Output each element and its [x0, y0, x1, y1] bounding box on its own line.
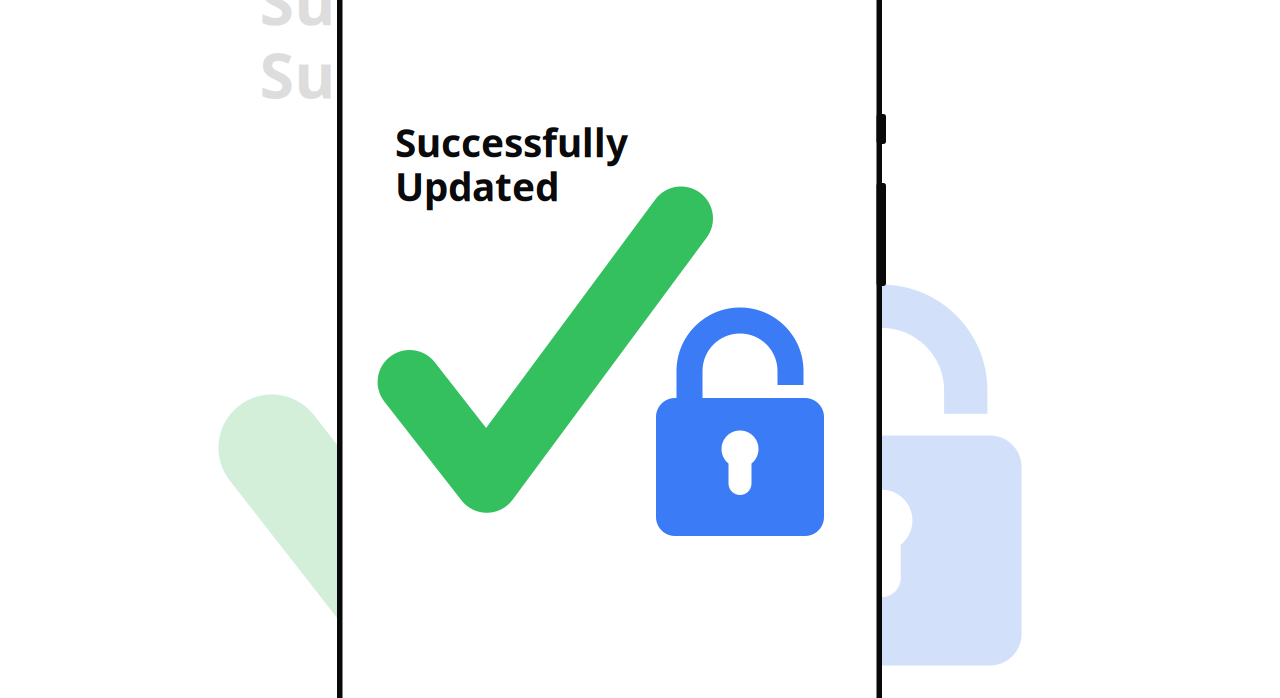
staticText: Successfully: [259, 0, 637, 42]
button[interactable]: Volume up: [876, 114, 886, 144]
staticText: Successfully: [395, 116, 628, 168]
button[interactable]: Volume down: [876, 183, 886, 286]
staticText: Updated: [395, 160, 559, 212]
staticText: Successfully: [259, 33, 637, 116]
button[interactable]: Successfully Updated: [0, 0, 1280, 698]
